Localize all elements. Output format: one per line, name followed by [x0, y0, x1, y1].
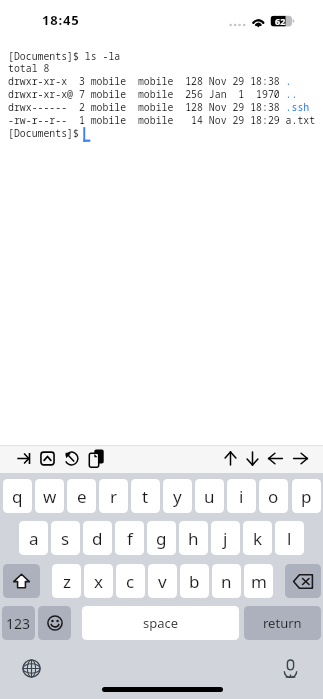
- button[interactable]: q: [3, 479, 32, 513]
- button[interactable]: v: [148, 564, 177, 598]
- staticText: 18:45: [42, 11, 80, 29]
- staticText: p: [301, 485, 312, 508]
- button[interactable]: e: [67, 479, 96, 513]
- staticText: g: [156, 527, 167, 550]
- button[interactable]: Tab: [12, 446, 34, 471]
- staticText: f: [127, 527, 133, 550]
- button[interactable]: Dictate: [281, 659, 300, 678]
- button[interactable]: y: [163, 479, 192, 513]
- staticText: z: [63, 570, 71, 593]
- button[interactable]: x: [84, 564, 113, 598]
- button[interactable]: return: [244, 606, 321, 640]
- button[interactable]: Switch keyboard: [22, 659, 41, 678]
- button[interactable]: Cursor up: [219, 446, 241, 471]
- button[interactable]: o: [259, 479, 288, 513]
- button[interactable]: p: [292, 479, 321, 513]
- staticText: o: [268, 485, 279, 508]
- staticText: e: [77, 485, 87, 508]
- staticText: [Documents]$ ls -la total 8 drwxr-xr-x 3…: [8, 49, 316, 140]
- staticText: q: [12, 485, 23, 508]
- staticText: t: [142, 485, 149, 508]
- button[interactable]: space: [82, 606, 239, 640]
- staticText: n: [221, 570, 232, 593]
- button[interactable]: w: [35, 479, 64, 513]
- button[interactable]: a: [19, 521, 48, 555]
- staticText: s: [61, 527, 70, 550]
- staticText: c: [126, 570, 135, 593]
- staticText: space: [143, 614, 179, 632]
- button[interactable]: b: [180, 564, 209, 598]
- button[interactable]: Control: [36, 446, 58, 471]
- button[interactable]: l: [275, 521, 304, 555]
- button[interactable]: d: [83, 521, 112, 555]
- button[interactable]: Cursor left: [264, 446, 286, 471]
- staticText: d: [92, 527, 103, 550]
- staticText: m: [251, 570, 267, 593]
- staticText: x: [94, 570, 103, 593]
- staticText: b: [189, 570, 200, 593]
- staticText: u: [204, 485, 215, 508]
- button[interactable]: n: [212, 564, 241, 598]
- button[interactable]: r: [99, 479, 128, 513]
- staticText: j: [223, 527, 228, 550]
- button[interactable]: Shift: [3, 564, 40, 598]
- staticText: r: [110, 485, 118, 508]
- button[interactable]: Cursor down: [241, 446, 263, 471]
- staticText: v: [158, 570, 167, 593]
- staticText: 62: [275, 15, 286, 27]
- staticText: l: [287, 527, 292, 550]
- button[interactable]: 123: [2, 606, 35, 640]
- button[interactable]: i: [227, 479, 256, 513]
- staticText: w: [43, 485, 57, 508]
- staticText: i: [239, 485, 244, 508]
- button[interactable]: j: [211, 521, 240, 555]
- button[interactable]: k: [243, 521, 272, 555]
- button[interactable]: History: [60, 446, 82, 471]
- staticText: a: [29, 527, 39, 550]
- button[interactable]: f: [115, 521, 144, 555]
- staticText: y: [173, 485, 182, 508]
- button[interactable]: u: [195, 479, 224, 513]
- button[interactable]: Paste: [85, 446, 107, 471]
- button[interactable]: c: [116, 564, 145, 598]
- button[interactable]: s: [51, 521, 80, 555]
- staticText: h: [188, 527, 199, 550]
- staticText: 123: [6, 614, 31, 633]
- button[interactable]: t: [131, 479, 160, 513]
- staticText: k: [253, 527, 263, 550]
- button[interactable]: h: [179, 521, 208, 555]
- button[interactable]: m: [244, 564, 273, 598]
- staticText: return: [263, 614, 302, 632]
- button[interactable]: Cursor right: [289, 446, 311, 471]
- button[interactable]: Emoji: [38, 606, 71, 640]
- button[interactable]: g: [147, 521, 176, 555]
- button[interactable]: Backspace: [285, 564, 321, 598]
- button[interactable]: z: [52, 564, 81, 598]
